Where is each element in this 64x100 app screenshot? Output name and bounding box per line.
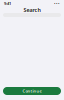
button[interactable]: Continue	[3, 87, 61, 95]
staticText: 9:41	[4, 1, 11, 6]
staticText: Search	[23, 6, 40, 14]
staticText: •••	[54, 1, 60, 6]
staticText: Continue	[22, 88, 41, 94]
